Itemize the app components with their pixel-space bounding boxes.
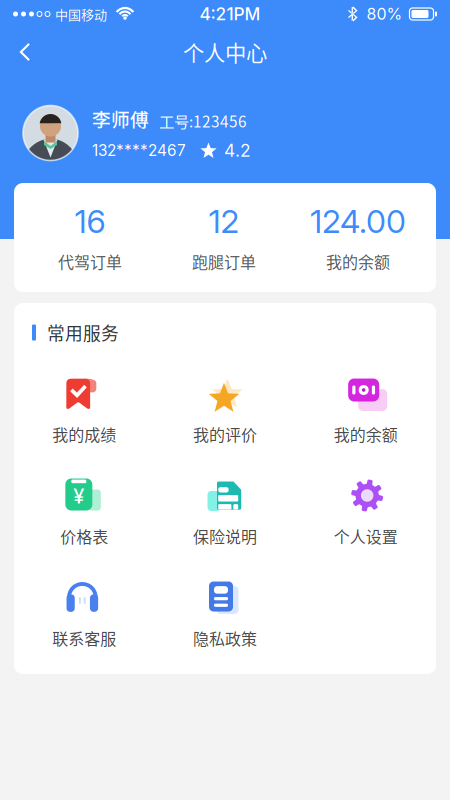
button[interactable]: ¥ xyxy=(14,474,155,576)
button[interactable]: 保险说明 xyxy=(155,474,295,576)
staticText: 跑腿订单 xyxy=(192,250,256,273)
staticText: 我的余额 xyxy=(334,422,398,446)
staticText: 个人中心 xyxy=(183,37,267,67)
button[interactable]: 联系客服 xyxy=(14,576,155,678)
staticText: 4:21PM xyxy=(199,3,260,24)
staticText: 12 xyxy=(208,202,239,241)
button[interactable]: 12 xyxy=(157,183,291,292)
button[interactable]: 我的余额 xyxy=(295,372,436,474)
staticText: 工号:123456 xyxy=(159,110,247,132)
staticText: 保险说明 xyxy=(193,524,257,548)
staticText: 4.2 xyxy=(224,140,251,161)
staticText: 我的成绩 xyxy=(52,422,116,446)
staticText: 80% xyxy=(366,4,402,24)
staticText: 隐私政策 xyxy=(193,626,257,650)
staticText: 我的评价 xyxy=(193,422,257,446)
staticText: 价格表 xyxy=(60,524,108,548)
staticText: 124.00 xyxy=(310,202,406,241)
button[interactable]: 124.00 xyxy=(291,183,425,292)
button[interactable]: 个人设置 xyxy=(295,474,436,576)
staticText: 联系客服 xyxy=(52,626,116,650)
button[interactable]: 隐私政策 xyxy=(155,576,295,678)
staticText: 中国移动 xyxy=(55,4,107,23)
button[interactable]: 我的评价 xyxy=(155,372,295,474)
button[interactable]: 我的成绩 xyxy=(14,372,155,474)
button[interactable]: Back xyxy=(0,29,51,74)
staticText: 个人设置 xyxy=(334,524,398,548)
staticText: 常用服务 xyxy=(47,320,119,345)
staticText: ¥ xyxy=(73,484,84,508)
staticText: 我的余额 xyxy=(326,250,390,273)
staticText: 132****2467 xyxy=(92,141,186,160)
staticText: 李师傅 xyxy=(92,105,149,132)
button[interactable]: 16 xyxy=(23,183,157,292)
staticText: 16 xyxy=(74,202,105,241)
staticText: 代驾订单 xyxy=(58,250,122,273)
